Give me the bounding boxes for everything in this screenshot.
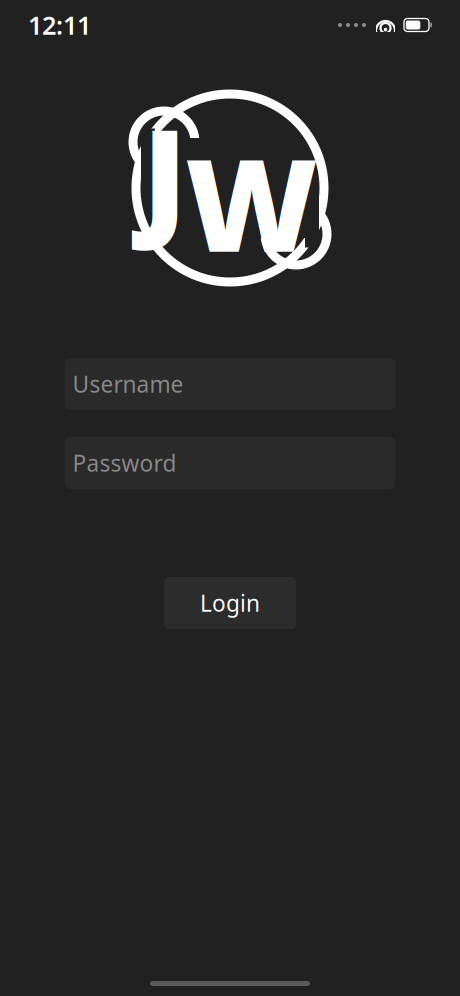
staticText: J xyxy=(142,87,187,257)
staticText: Password xyxy=(72,448,176,478)
staticText: Login xyxy=(200,588,260,618)
staticText: W xyxy=(185,117,318,287)
button[interactable]: Login xyxy=(164,577,296,629)
staticText: Username xyxy=(72,369,183,399)
staticText: 12:11 xyxy=(28,8,91,42)
